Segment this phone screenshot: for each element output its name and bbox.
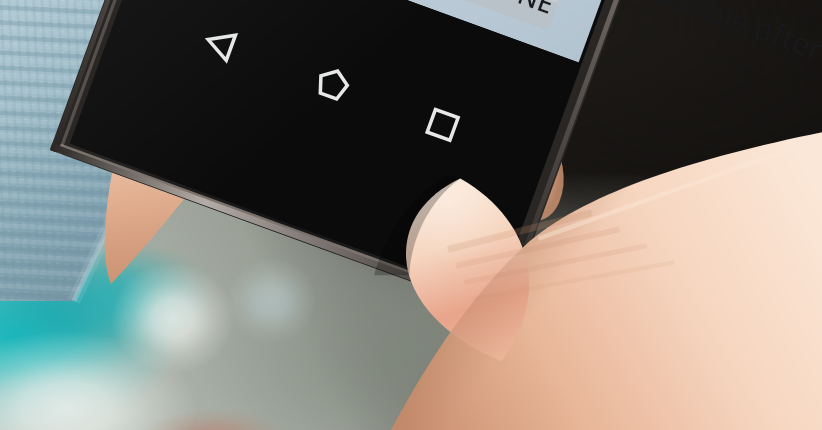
other: Reset phone [0, 0, 822, 430]
button[interactable]: Reset phone [0, 0, 822, 430]
